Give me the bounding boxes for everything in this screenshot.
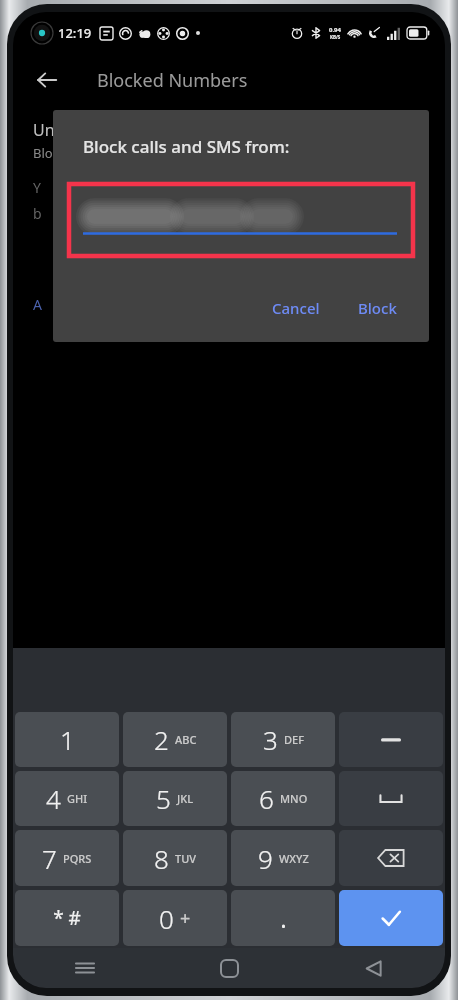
staticText: A: [33, 295, 42, 314]
staticText: * #: [53, 905, 81, 931]
staticText: DEF: [284, 732, 304, 747]
staticText: 2: [154, 722, 169, 757]
staticText: 1: [60, 722, 75, 757]
button[interactable]: 8: [123, 830, 227, 886]
button[interactable]: Dash: [339, 712, 443, 767]
button[interactable]: 2: [123, 712, 227, 767]
staticText: 8: [154, 841, 169, 876]
button[interactable]: 3: [231, 712, 335, 767]
button[interactable]: Cancel: [262, 292, 330, 324]
staticText: Cancel: [272, 298, 320, 318]
staticText: 0.94: [329, 26, 341, 34]
button[interactable]: 7: [15, 830, 119, 886]
button[interactable]: Enter: [339, 890, 443, 946]
staticText: Unknown: [33, 119, 105, 141]
button[interactable]: 0: [123, 890, 227, 946]
staticText: Blocked Numbers: [97, 68, 248, 93]
button[interactable]: Space: [339, 771, 443, 826]
staticText: Block calls and SMS from:: [83, 135, 290, 158]
staticText: ABC: [175, 732, 197, 747]
staticText: 9: [258, 841, 273, 876]
staticText: 6: [259, 781, 274, 816]
staticText: 4: [46, 781, 61, 816]
staticText: Block calls from unidentified callers: [33, 144, 249, 162]
button[interactable]: Home: [157, 948, 301, 988]
staticText: 0: [159, 901, 174, 936]
button[interactable]: .: [231, 890, 335, 946]
staticText: JKL: [177, 791, 194, 806]
button[interactable]: 6: [231, 771, 335, 826]
staticText: Block: [358, 298, 397, 318]
staticText: +: [180, 906, 191, 931]
staticText: .: [280, 902, 287, 935]
staticText: MNO: [280, 791, 308, 806]
staticText: WXYZ: [279, 851, 309, 866]
button[interactable]: Block: [348, 292, 407, 324]
button[interactable]: 5: [123, 771, 227, 826]
button[interactable]: 1: [15, 712, 119, 767]
staticText: 5: [156, 781, 171, 816]
staticText: TUV: [175, 851, 197, 866]
staticText: Y: [33, 178, 41, 197]
button[interactable]: Backspace: [339, 830, 443, 886]
button[interactable]: Back: [301, 948, 445, 988]
button[interactable]: Recents: [13, 948, 157, 988]
button[interactable]: Back: [27, 60, 67, 100]
staticText: 7: [42, 841, 57, 876]
staticText: GHI: [67, 791, 88, 806]
button[interactable]: * #: [15, 890, 119, 946]
button[interactable]: 4: [15, 771, 119, 826]
button[interactable]: 9: [231, 830, 335, 886]
staticText: PQRS: [63, 851, 92, 866]
staticText: b: [33, 204, 42, 223]
staticText: 3: [263, 722, 278, 757]
button[interactable]: Unknown: [13, 106, 445, 174]
staticText: KB/S: [330, 34, 341, 40]
staticText: 12:19: [58, 24, 92, 42]
